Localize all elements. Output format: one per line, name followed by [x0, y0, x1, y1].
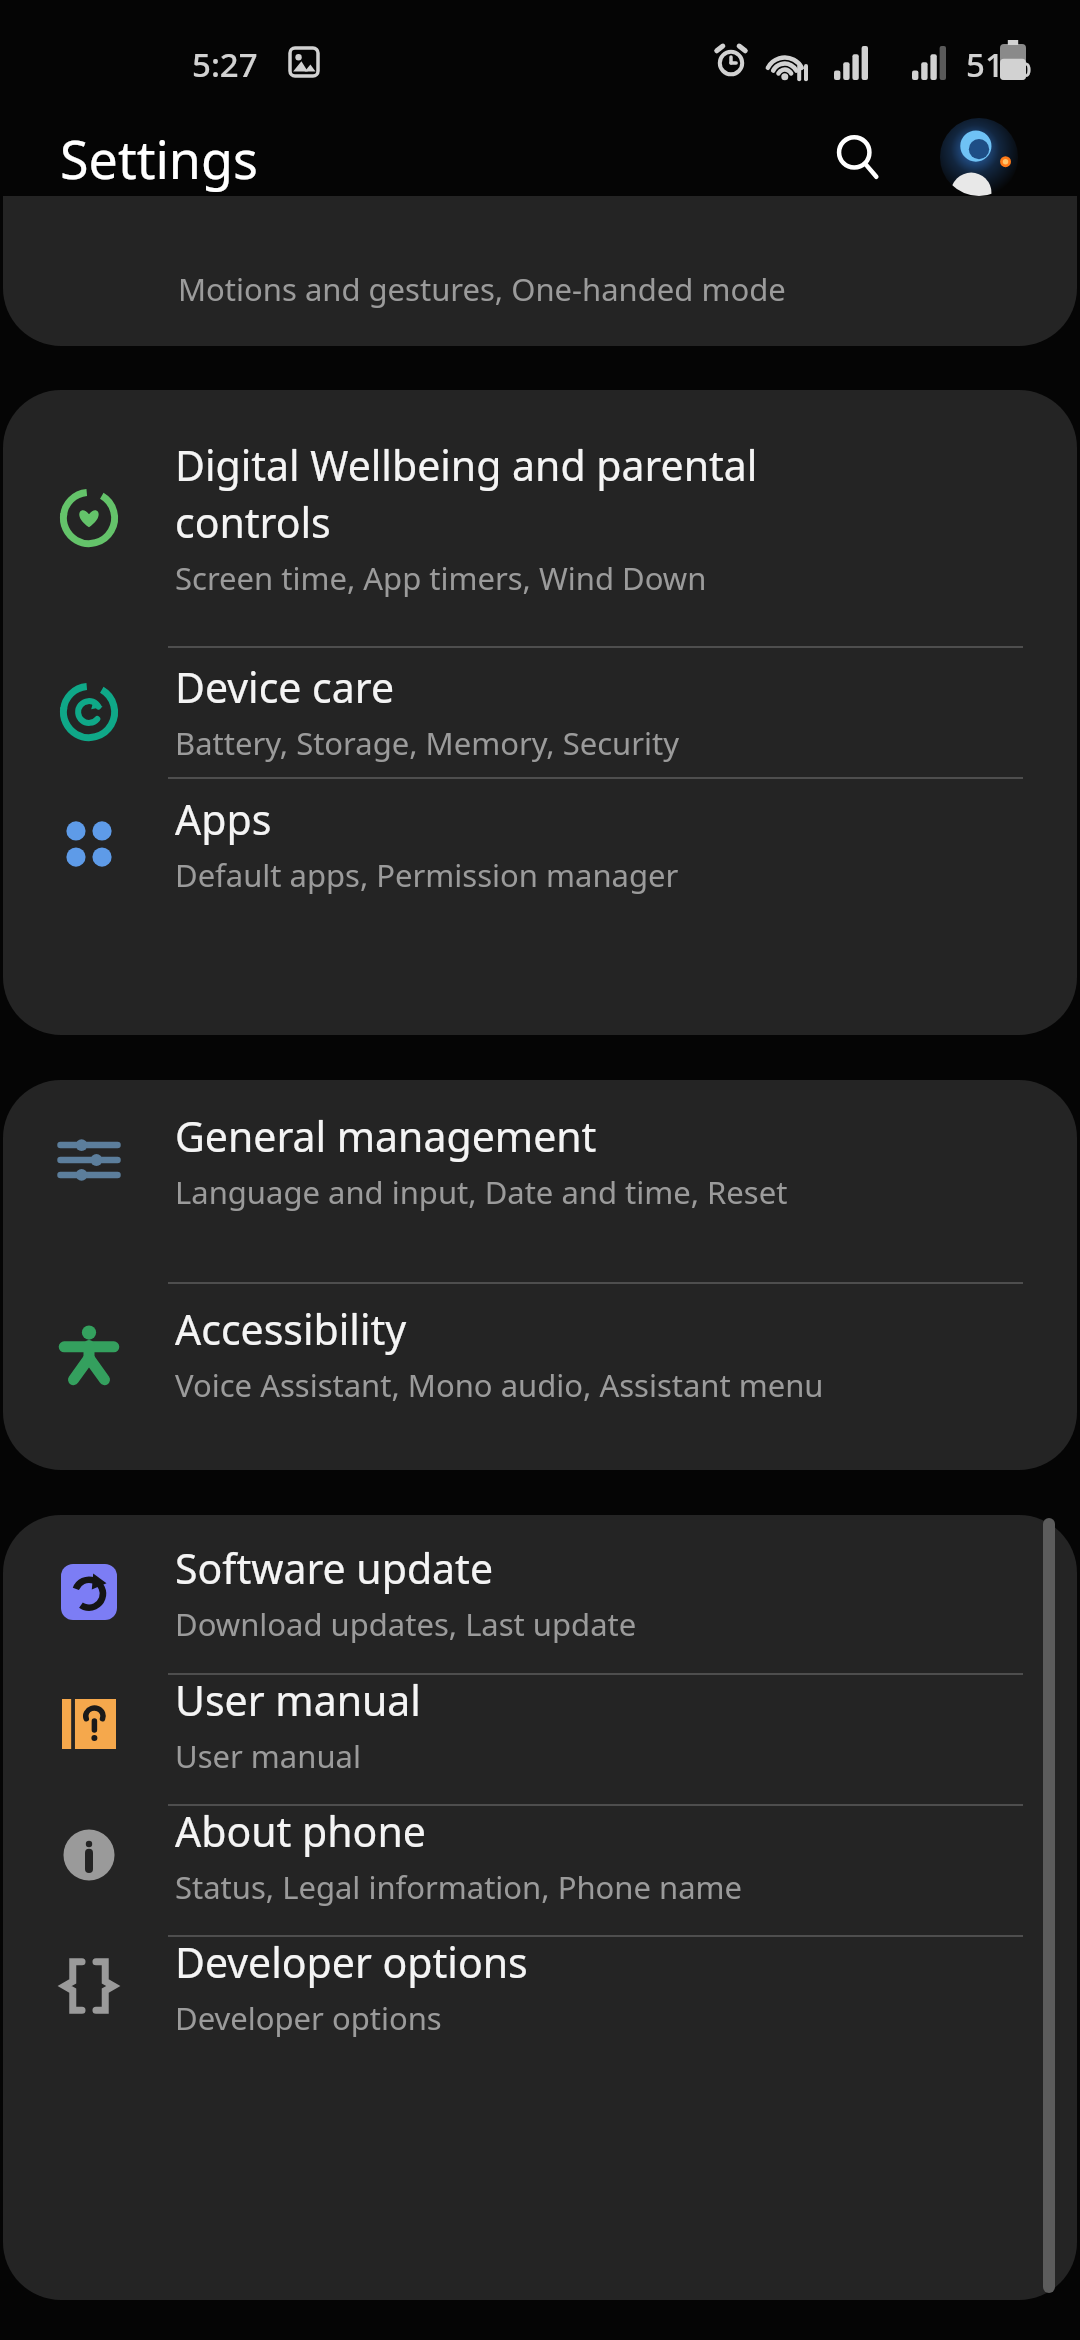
staticText: Voice Assistant, Mono audio, Assistant m…: [175, 1364, 824, 1406]
staticText: General management: [175, 1108, 597, 1164]
button[interactable]: General management: [3, 1090, 1077, 1230]
staticText: Accessibility: [175, 1301, 407, 1357]
staticText: Device care: [175, 659, 395, 715]
staticText: Settings: [60, 123, 258, 194]
button[interactable]: Software update: [3, 1522, 1077, 1662]
staticText: Status, Legal information, Phone name: [175, 1866, 743, 1908]
staticText: Developer options: [175, 1997, 442, 2039]
button[interactable]: Motions and gestures, One-handed mode: [3, 196, 1077, 346]
staticText: 5:27: [192, 42, 258, 87]
button[interactable]: User manual: [3, 1654, 1077, 1794]
button[interactable]: About phone: [3, 1785, 1077, 1925]
staticText: Motions and gestures, One-handed mode: [178, 268, 786, 310]
staticText: Apps: [175, 791, 272, 847]
button[interactable]: Search: [818, 118, 896, 196]
staticText: 51%: [966, 42, 1032, 87]
staticText: Software update: [175, 1540, 494, 1596]
staticText: Digital Wellbeing and parental controls: [175, 437, 758, 550]
button[interactable]: Device care: [3, 646, 1077, 777]
staticText: Default apps, Permission manager: [175, 854, 679, 896]
button[interactable]: Digital Wellbeing and parental controls: [3, 390, 1077, 646]
button[interactable]: Developer options: [3, 1916, 1077, 2056]
staticText: Download updates, Last update: [175, 1603, 637, 1645]
button[interactable]: Accessibility: [3, 1283, 1077, 1423]
staticText: Developer options: [175, 1934, 528, 1990]
staticText: Language and input, Date and time, Reset: [175, 1171, 788, 1213]
staticText: Battery, Storage, Memory, Security: [175, 722, 680, 764]
staticText: User manual: [175, 1735, 361, 1777]
button[interactable]: Account: [940, 118, 1018, 196]
button[interactable]: Apps: [3, 778, 1077, 909]
staticText: About phone: [175, 1803, 426, 1859]
staticText: Screen time, App timers, Wind Down: [175, 557, 707, 599]
staticText: User manual: [175, 1672, 421, 1728]
